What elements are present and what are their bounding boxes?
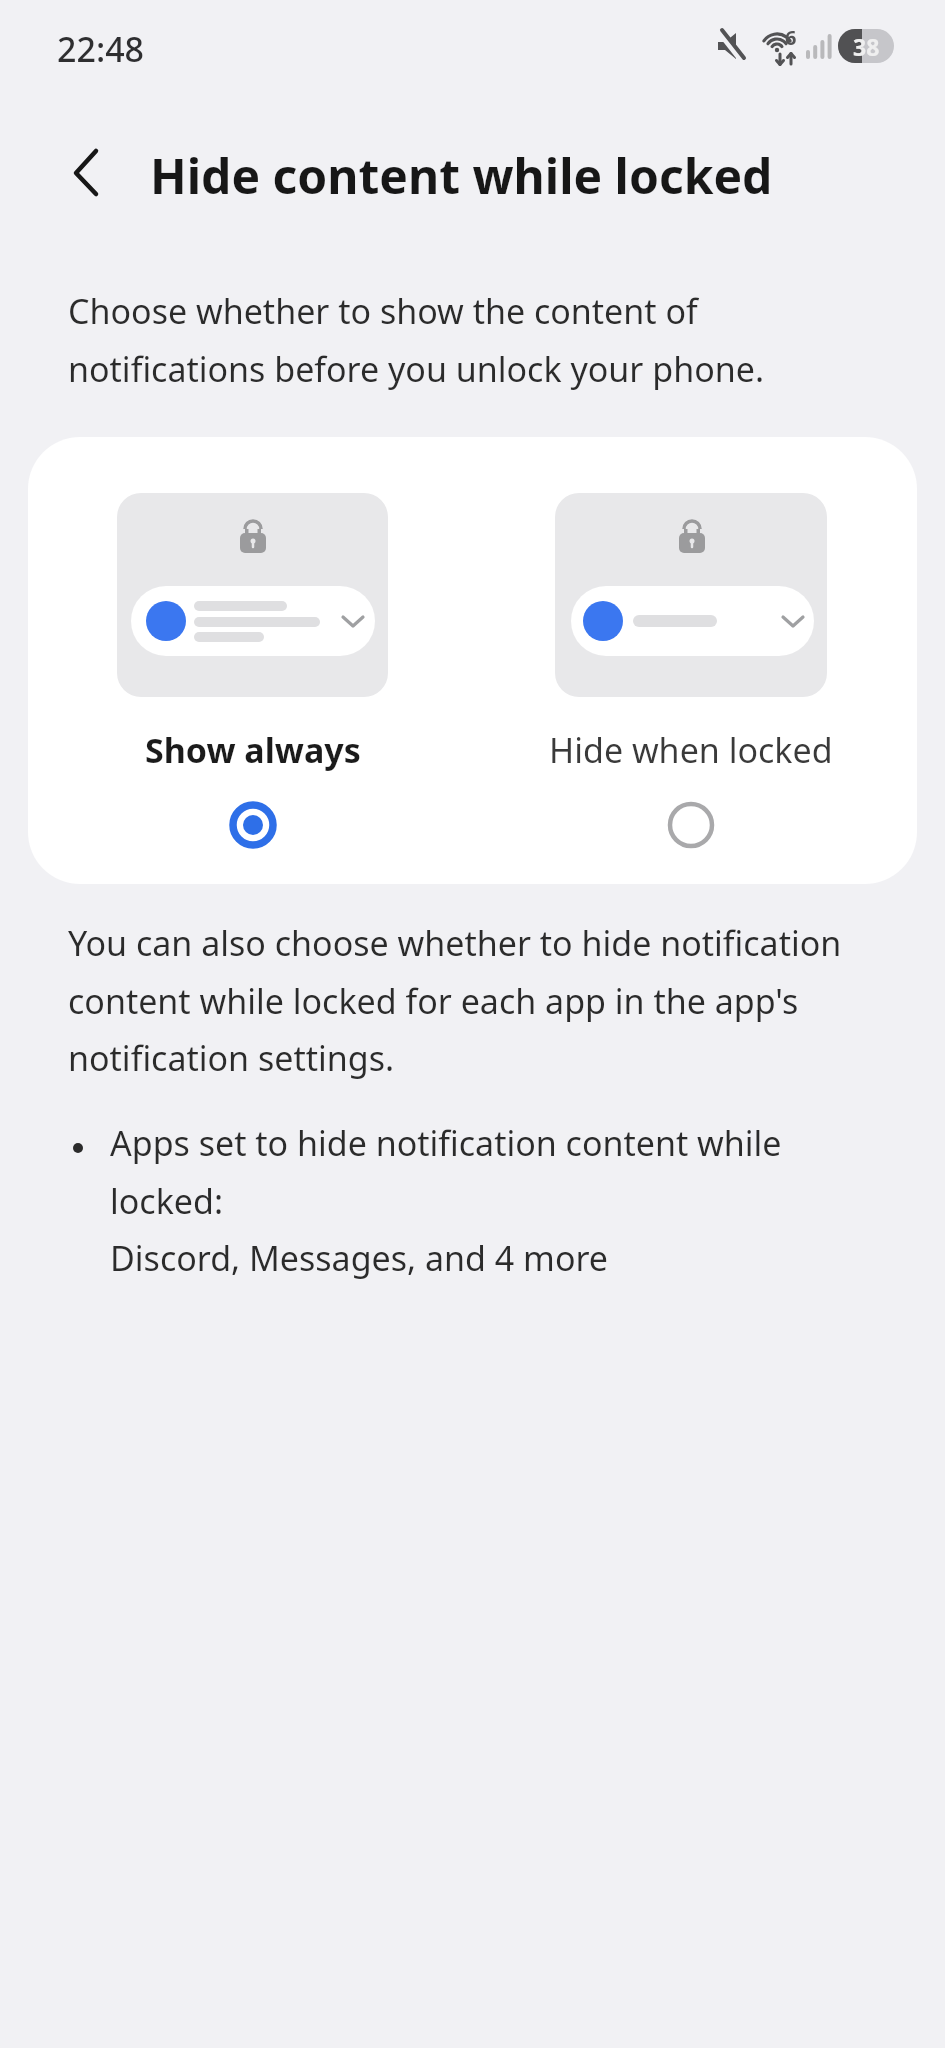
staticText: Choose whether to show the content of no…	[68, 288, 765, 392]
staticText: You can also choose whether to hide noti…	[68, 920, 842, 1081]
button[interactable]	[665, 799, 717, 851]
button[interactable]	[117, 493, 388, 697]
button[interactable]	[555, 493, 827, 697]
button[interactable]	[227, 799, 279, 851]
staticText: Apps set to hide notification content wh…	[110, 1120, 782, 1281]
staticText: 6	[785, 24, 797, 51]
staticText: Hide when locked	[549, 727, 833, 773]
staticText: 22:48	[57, 26, 145, 72]
staticText: 38	[853, 31, 880, 62]
staticText: Hide content while locked	[150, 143, 773, 208]
staticText: Show always	[145, 727, 361, 773]
button[interactable]	[64, 148, 112, 196]
